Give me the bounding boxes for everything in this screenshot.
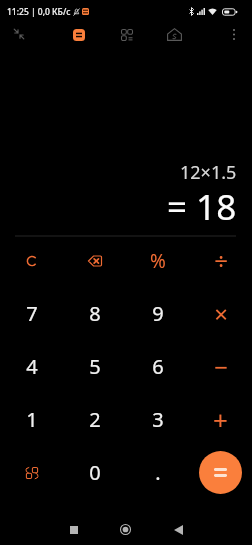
staticText: 1 — [26, 406, 38, 433]
button[interactable]: Backspace — [63, 234, 126, 287]
button[interactable]: % — [126, 234, 189, 287]
button[interactable]: Collapse — [5, 20, 33, 48]
button[interactable]: Calculator — [64, 20, 93, 49]
button[interactable]: 6 — [126, 340, 189, 393]
staticText: 7 — [26, 300, 38, 327]
button[interactable]: 1 — [0, 393, 63, 446]
button[interactable]: Recent apps — [61, 517, 86, 542]
button[interactable]: . — [126, 446, 189, 499]
button[interactable]: + — [189, 393, 252, 446]
staticText: 11:25 | 0,0 КБ/c — [7, 6, 71, 18]
button[interactable]: 2 — [63, 393, 126, 446]
staticText: . — [155, 459, 161, 486]
button[interactable]: Clear — [0, 234, 63, 287]
staticText: + — [213, 402, 228, 437]
staticText: 5 — [89, 353, 101, 380]
staticText: 9 — [152, 300, 164, 327]
button[interactable]: Home — [113, 517, 138, 542]
button[interactable]: 9 — [126, 287, 189, 340]
button[interactable]: 4 — [0, 340, 63, 393]
button[interactable]: Back — [166, 517, 191, 542]
staticText: = 18 — [167, 183, 237, 231]
button[interactable]: Equals — [199, 451, 242, 494]
staticText: 8 — [89, 300, 101, 327]
button[interactable]: More options — [219, 20, 248, 49]
staticText: ÷ — [214, 244, 228, 277]
button[interactable]: Mortgage calculator — [160, 20, 189, 49]
button[interactable]: Unit converter — [0, 446, 63, 499]
staticText: 0 — [89, 459, 101, 486]
staticText: 4 — [26, 353, 38, 380]
staticText: 2 — [89, 406, 101, 433]
button[interactable]: ÷ — [189, 234, 252, 287]
button[interactable]: 7 — [0, 287, 63, 340]
staticText: 3 — [152, 406, 164, 433]
staticText: 12×1.5 — [180, 160, 237, 185]
staticText: − — [214, 350, 228, 383]
button[interactable]: 0 — [63, 446, 126, 499]
button[interactable]: History — [112, 20, 141, 49]
button[interactable]: 3 — [126, 393, 189, 446]
button[interactable]: 5 — [63, 340, 126, 393]
button[interactable]: − — [189, 340, 252, 393]
staticText: 6 — [152, 353, 164, 380]
staticText: % — [150, 248, 166, 274]
button[interactable]: 8 — [63, 287, 126, 340]
staticText: × — [214, 297, 228, 330]
button[interactable]: × — [189, 287, 252, 340]
